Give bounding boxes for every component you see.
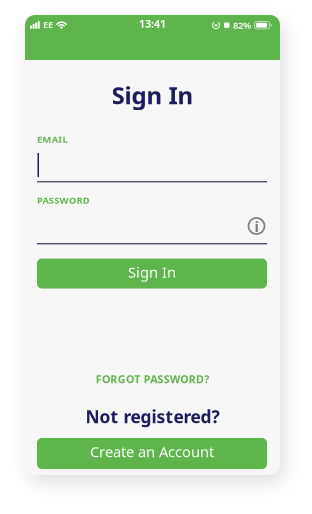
staticText: Create an Account <box>90 442 214 461</box>
staticText: Sign In <box>128 262 176 282</box>
button[interactable]: Sign In <box>37 258 267 288</box>
staticText: FORGOT PASSWORD? <box>96 372 209 386</box>
staticText: EMAIL <box>37 133 68 145</box>
button[interactable]: PASSWORD <box>37 197 267 245</box>
staticText: Sign In <box>111 79 193 111</box>
staticText: Not registered? <box>85 405 219 428</box>
staticText: EE <box>43 18 53 31</box>
staticText: i <box>254 217 258 236</box>
staticText: 82% <box>233 19 251 31</box>
button[interactable]: EMAIL <box>37 136 267 183</box>
button[interactable]: Create an Account <box>37 438 267 469</box>
button[interactable]: Password information <box>248 218 264 234</box>
staticText: 13:41 <box>139 16 166 31</box>
staticText: PASSWORD <box>37 194 90 206</box>
button[interactable]: FORGOT PASSWORD? <box>25 372 280 386</box>
